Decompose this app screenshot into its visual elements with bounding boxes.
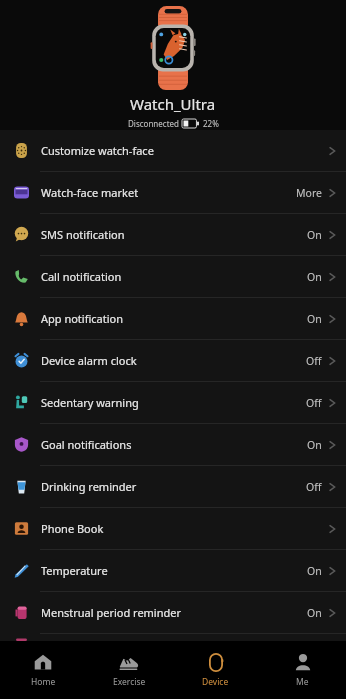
button[interactable]: Device alarm clock bbox=[0, 340, 346, 382]
staticText: Sedentary warning bbox=[41, 395, 139, 410]
other: Open bbox=[329, 229, 336, 241]
button[interactable]: Customize watch-face bbox=[0, 130, 346, 172]
staticText: Device alarm clock bbox=[41, 353, 137, 368]
other: Open bbox=[329, 523, 336, 535]
staticText: Customize watch-face bbox=[41, 143, 154, 158]
staticText: Device bbox=[202, 676, 229, 688]
staticText: Exercise bbox=[113, 676, 146, 688]
staticText: Home bbox=[31, 676, 56, 688]
staticText: On bbox=[307, 312, 322, 326]
button[interactable]: App notification bbox=[0, 298, 346, 340]
staticText: Drinking reminder bbox=[41, 479, 137, 494]
button[interactable]: Home bbox=[0, 641, 86, 699]
other: Open bbox=[329, 439, 336, 451]
staticText: On bbox=[307, 606, 322, 620]
staticText: Watch-face market bbox=[41, 185, 139, 200]
button[interactable]: Goal notifications bbox=[0, 424, 346, 466]
staticText: Call notification bbox=[41, 269, 122, 284]
other: Open bbox=[329, 607, 336, 619]
staticText: On bbox=[307, 564, 322, 578]
staticText: Off bbox=[306, 480, 322, 494]
staticText: Temperature bbox=[41, 563, 108, 578]
button[interactable]: Watch-face market bbox=[0, 172, 346, 214]
button[interactable]: Temperature bbox=[0, 550, 346, 592]
staticText: On bbox=[307, 228, 322, 242]
staticText: Phone Book bbox=[41, 521, 104, 536]
other: Open bbox=[329, 565, 336, 577]
staticText: Off bbox=[306, 354, 322, 368]
staticText: 22% bbox=[203, 118, 219, 129]
staticText: On bbox=[307, 270, 322, 284]
staticText: Disconnected bbox=[128, 118, 179, 129]
button[interactable]: Menstrual period reminder bbox=[0, 592, 346, 634]
button[interactable]: SMS notification bbox=[0, 214, 346, 256]
other: Open bbox=[329, 313, 336, 325]
staticText: More bbox=[296, 186, 322, 200]
other: Open bbox=[329, 271, 336, 283]
button[interactable]: Phone Book bbox=[0, 508, 346, 550]
button[interactable]: Drinking reminder bbox=[0, 466, 346, 508]
other: Open bbox=[329, 187, 336, 199]
other: Open bbox=[329, 481, 336, 493]
staticText: Watch_Ultra bbox=[130, 94, 216, 114]
staticText: Goal notifications bbox=[41, 437, 132, 452]
staticText: Menstrual period reminder bbox=[41, 605, 182, 620]
button[interactable]: Call notification bbox=[0, 256, 346, 298]
button[interactable]: Sedentary warning bbox=[0, 382, 346, 424]
other: Open bbox=[329, 397, 336, 409]
other: Open bbox=[329, 145, 336, 157]
staticText: SMS notification bbox=[41, 227, 125, 242]
staticText: App notification bbox=[41, 311, 124, 326]
staticText: Me bbox=[296, 676, 309, 688]
other: Open bbox=[329, 355, 336, 367]
button[interactable]: Exercise bbox=[86, 641, 172, 699]
button[interactable]: Me bbox=[259, 641, 346, 699]
staticText: On bbox=[307, 438, 322, 452]
button[interactable]: Device bbox=[172, 641, 259, 699]
staticText: Off bbox=[306, 396, 322, 410]
